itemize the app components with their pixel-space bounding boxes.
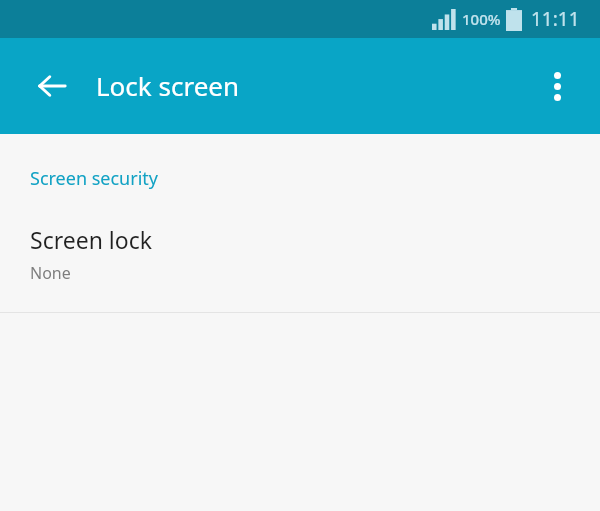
button[interactable]: More options [531,60,583,112]
button[interactable]: Screen lock [0,198,600,312]
staticText: Lock screen [96,68,240,103]
staticText: 11:11 [531,6,580,32]
staticText: Screen lock [30,224,153,255]
staticText: Screen security [30,166,158,191]
staticText: None [30,262,71,284]
staticText: 100% [462,9,501,29]
button[interactable]: Back [24,58,80,114]
